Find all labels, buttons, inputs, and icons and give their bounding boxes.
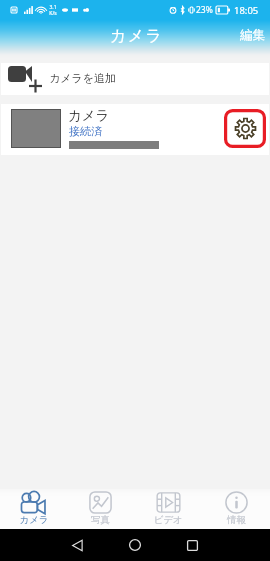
button[interactable]: 情報 bbox=[202, 489, 270, 529]
staticText: 情報 bbox=[227, 514, 246, 526]
button[interactable]: Settings bbox=[224, 109, 266, 148]
button[interactable]: Recents bbox=[177, 529, 207, 561]
staticText: カメラ bbox=[110, 26, 164, 46]
staticText: 18:05 bbox=[234, 4, 259, 17]
staticText: 3.1 K/s bbox=[49, 4, 57, 17]
button[interactable]: 写真 bbox=[67, 489, 134, 529]
staticText: カメラを追加 bbox=[49, 71, 117, 85]
button[interactable]: Home bbox=[120, 529, 150, 561]
button[interactable]: カメラ bbox=[0, 489, 67, 529]
button[interactable]: カメラを追加 bbox=[1, 63, 269, 95]
staticText: ビデオ bbox=[153, 514, 183, 526]
staticText: 編集 bbox=[240, 27, 265, 43]
button[interactable]: ビデオ bbox=[134, 489, 202, 529]
staticText: 写真 bbox=[91, 514, 110, 526]
button[interactable]: カメラ bbox=[1, 104, 269, 155]
button[interactable]: 編集 bbox=[240, 20, 270, 43]
staticText: カメラ bbox=[68, 107, 110, 124]
staticText: カメラ bbox=[19, 514, 49, 526]
button[interactable]: Back bbox=[62, 529, 92, 561]
staticText: 接続済 bbox=[69, 124, 102, 138]
staticText: 23% bbox=[196, 4, 213, 16]
